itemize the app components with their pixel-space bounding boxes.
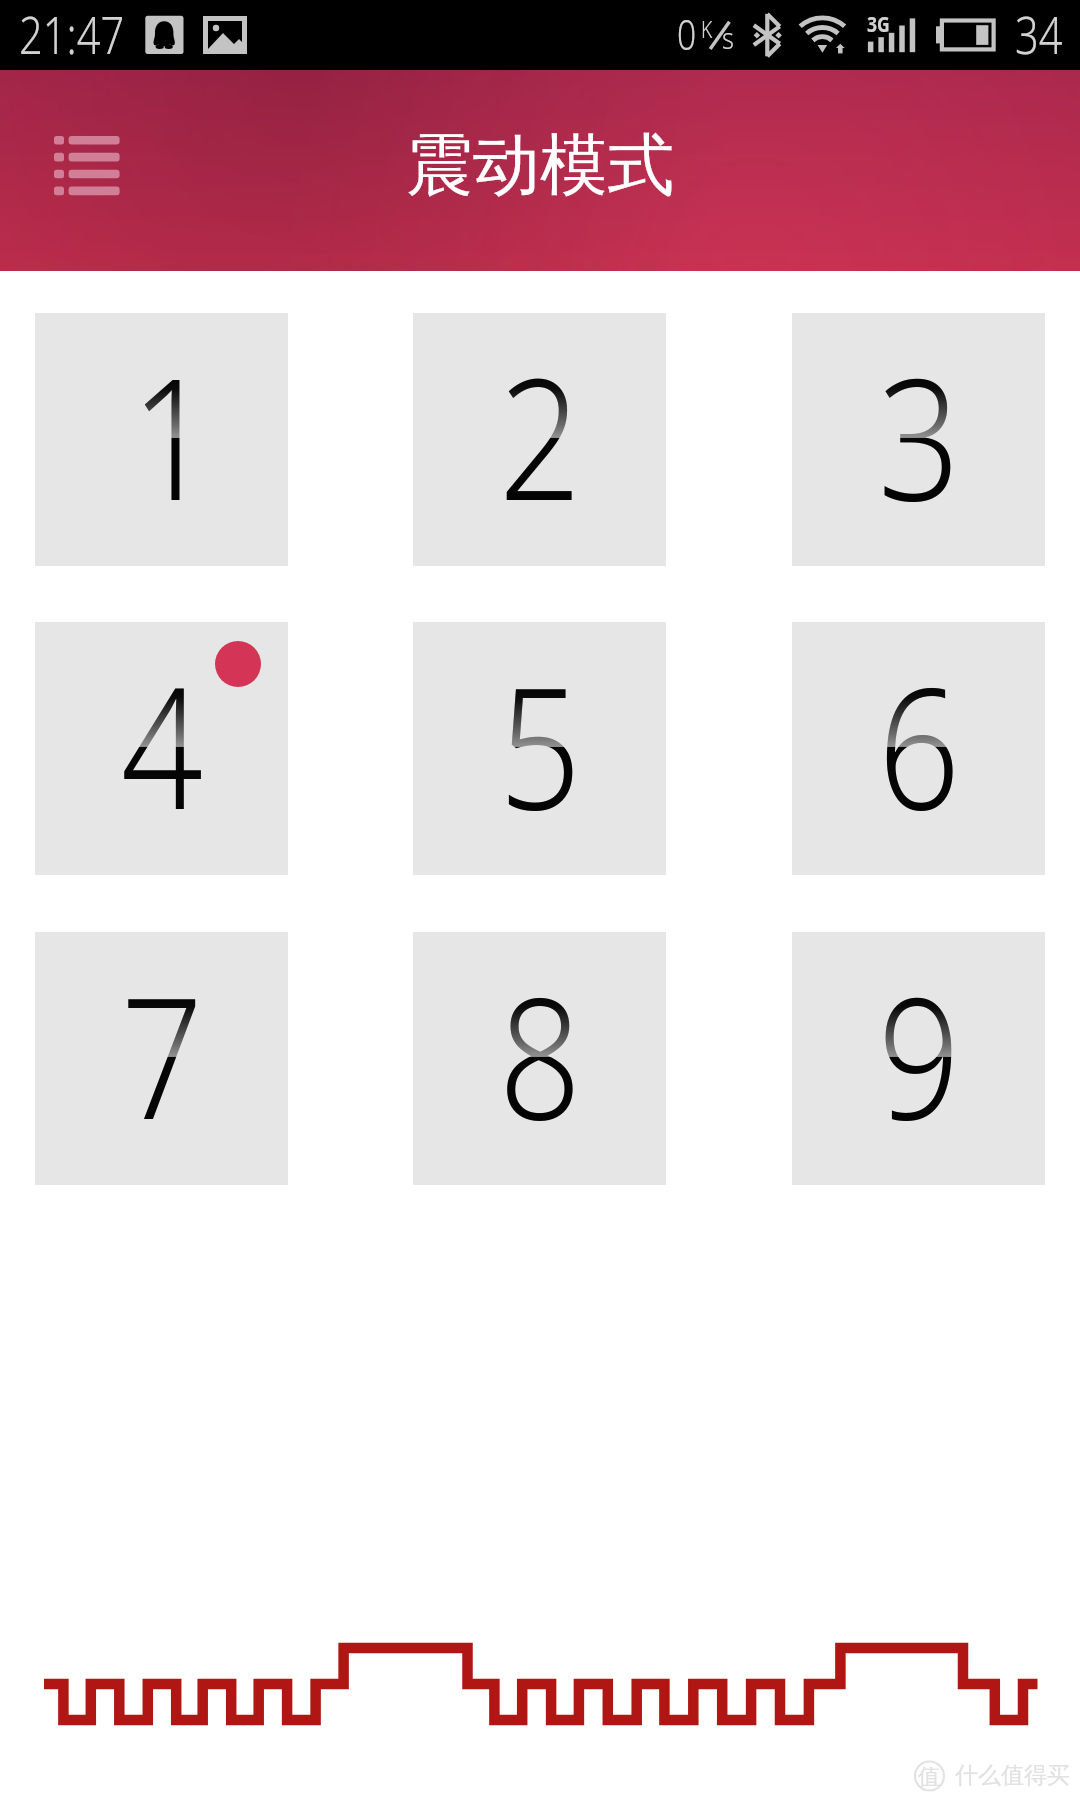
button[interactable]: 9 — [792, 932, 1045, 1185]
staticText: 8 — [499, 940, 581, 1167]
button[interactable]: 4 — [35, 622, 288, 875]
staticText: 什么值得买 — [955, 1761, 1070, 1790]
staticText: s — [722, 17, 735, 58]
staticText: 0 — [677, 5, 696, 62]
staticText: 7 — [121, 940, 203, 1167]
staticText: 6 — [878, 630, 960, 857]
button[interactable]: 7 — [35, 932, 288, 1185]
button[interactable]: 1 — [35, 313, 288, 566]
staticText: 震动模式 — [406, 123, 674, 207]
staticText: 1 — [131, 321, 213, 548]
staticText: 2 — [499, 321, 581, 548]
staticText: 21:47 — [19, 0, 125, 68]
staticText: 9 — [878, 940, 960, 1167]
staticText: K — [701, 12, 713, 45]
staticText: 3 — [878, 321, 960, 548]
staticText: 34 — [1015, 0, 1063, 68]
staticText: 3G — [867, 8, 890, 38]
button[interactable]: 2 — [413, 313, 666, 566]
button[interactable]: 3 — [792, 313, 1045, 566]
button[interactable]: 8 — [413, 932, 666, 1185]
staticText: 4 — [121, 630, 203, 857]
button[interactable]: 5 — [413, 622, 666, 875]
button[interactable]: 6 — [792, 622, 1045, 875]
button[interactable]: Menu — [36, 118, 138, 214]
staticText: 值 — [918, 1763, 940, 1791]
staticText: 5 — [499, 630, 581, 857]
